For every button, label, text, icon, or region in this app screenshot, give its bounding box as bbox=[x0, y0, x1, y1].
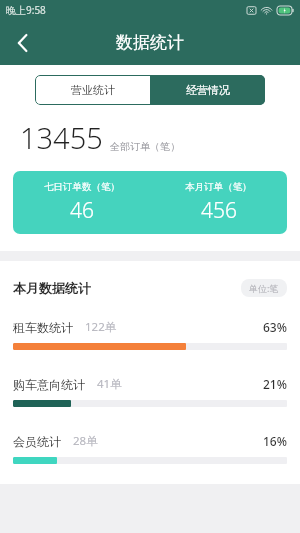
staticText: 租车数统计 bbox=[13, 320, 73, 335]
staticText: 63% bbox=[263, 319, 287, 335]
staticText: 单位:笔 bbox=[249, 282, 279, 294]
staticText: 七日订单数（笔） bbox=[44, 181, 120, 193]
staticText: 数据统计 bbox=[116, 32, 184, 53]
staticText: 16% bbox=[263, 433, 287, 449]
staticText: 28单 bbox=[73, 433, 98, 449]
staticText: 本月订单（笔） bbox=[185, 181, 252, 193]
staticText: 晚上9:58 bbox=[6, 3, 46, 17]
button[interactable]: 会员统计 bbox=[0, 433, 300, 464]
staticText: 购车意向统计 bbox=[13, 377, 85, 392]
staticText: 会员统计 bbox=[13, 434, 61, 449]
staticText: 本月数据统计 bbox=[13, 280, 91, 296]
staticText: 经营情况 bbox=[186, 83, 230, 97]
staticText: 13455 bbox=[20, 118, 103, 157]
staticText: 21% bbox=[263, 376, 287, 392]
button[interactable]: 营业统计 bbox=[35, 75, 150, 105]
staticText: 122单 bbox=[85, 319, 117, 335]
staticText: 456 bbox=[201, 196, 237, 225]
staticText: 全部订单（笔） bbox=[110, 140, 180, 153]
staticText: 46 bbox=[70, 196, 94, 225]
button[interactable]: 经营情况 bbox=[150, 75, 265, 105]
staticText: 41单 bbox=[97, 376, 122, 392]
staticText: 营业统计 bbox=[71, 83, 115, 97]
button[interactable]: Back bbox=[0, 20, 44, 65]
button[interactable]: 租车数统计 bbox=[0, 319, 300, 350]
button[interactable]: 购车意向统计 bbox=[0, 376, 300, 407]
